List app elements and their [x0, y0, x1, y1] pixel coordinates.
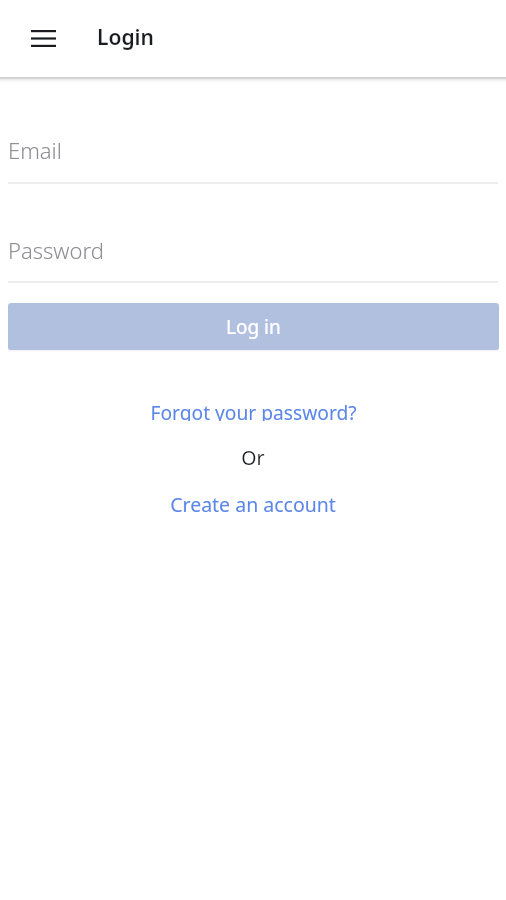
button[interactable]: Password: [0, 221, 506, 283]
staticText: Login: [97, 23, 154, 52]
staticText: Email: [8, 135, 62, 165]
staticText: Or: [241, 444, 265, 466]
staticText: Password: [8, 235, 104, 265]
button[interactable]: Log in: [8, 303, 499, 350]
staticText: Log in: [226, 314, 281, 340]
staticText: Create an account: [170, 491, 336, 513]
button[interactable]: Email: [0, 121, 506, 184]
button[interactable]: Open navigation menu: [19, 18, 68, 58]
staticText: Forgot your password?: [150, 399, 357, 421]
button[interactable]: Forgot your password?: [146, 396, 361, 424]
button[interactable]: Create an account: [166, 488, 340, 516]
